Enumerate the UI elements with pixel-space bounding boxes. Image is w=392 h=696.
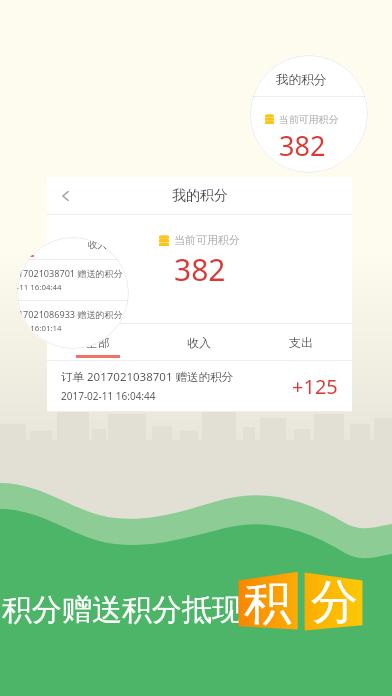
staticText: 订单 2017021086933 赠送的积分 [17,308,123,320]
button[interactable]: 订单 2017021038701 赠送的积分 [17,260,129,300]
staticText: 积分赠送积分抵现 [2,591,242,629]
staticText: 当前可用积分 [174,233,240,247]
staticText: 收入 [88,239,107,251]
button[interactable]: 收入 [148,324,250,360]
button[interactable]: 支出 [250,324,352,360]
button[interactable]: 订单 2017021038701 赠送的积分 [47,361,352,411]
staticText: 分 [311,573,358,632]
button[interactable]: 全部 [17,237,57,259]
staticText: 2017-02-11 16:01:14 [17,323,62,334]
staticText: 382 [174,249,226,290]
button[interactable]: 全部 [47,324,148,360]
button[interactable]: Back [55,185,77,207]
staticText: 订单 2017021038701 赠送的积分 [61,369,233,385]
staticText: 收入 [187,335,211,350]
button[interactable]: 订单 2017021086933 赠送的积分 [17,301,129,341]
staticText: 当前可用积分 [279,113,339,125]
staticText: 2017-02-11 16:04:44 [61,389,156,403]
staticText: 382 [279,127,326,164]
staticText: 积 [244,574,291,633]
staticText: 订单 2017021038701 赠送的积分 [17,267,123,279]
staticText: 我的积分 [172,187,228,205]
button[interactable]: 收入 [57,237,129,259]
staticText: 支出 [289,335,313,350]
staticText: +125 [292,373,338,400]
staticText: 2017-02-11 16:04:44 [17,282,62,293]
staticText: 我的积分 [276,72,327,88]
staticText: 全部 [86,335,110,350]
